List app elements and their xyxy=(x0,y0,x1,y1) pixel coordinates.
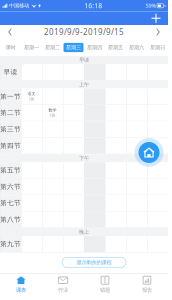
staticText: 16:18 xyxy=(84,1,102,10)
staticText: 2019/9/9-2019/9/15 xyxy=(44,27,124,37)
button[interactable]: 星期五 xyxy=(105,39,126,56)
button[interactable]: Next week xyxy=(148,25,168,39)
button[interactable] xyxy=(126,138,147,154)
button[interactable]: 错题 xyxy=(84,273,126,300)
button[interactable] xyxy=(105,212,126,227)
button[interactable]: 星期六 xyxy=(126,39,147,56)
button[interactable]: 作业 xyxy=(42,273,84,300)
button[interactable] xyxy=(147,138,168,154)
staticText: 报告 xyxy=(142,287,152,293)
button[interactable] xyxy=(147,212,168,227)
button[interactable]: 星期四 xyxy=(84,39,105,56)
staticText: 错题 xyxy=(100,287,110,293)
staticText: 星期日 xyxy=(150,44,165,51)
staticText: 星期五 xyxy=(108,44,123,51)
staticText: 中国移动 xyxy=(9,2,29,9)
button[interactable]: 数学 xyxy=(42,105,63,121)
button[interactable]: Add xyxy=(148,11,164,25)
button[interactable] xyxy=(42,212,63,227)
button[interactable]: 显示剩余的课程 xyxy=(62,257,126,267)
button[interactable] xyxy=(126,162,147,178)
staticText: 早读 xyxy=(79,57,89,63)
button[interactable]: 语文 xyxy=(21,88,42,104)
staticText: 语文 xyxy=(27,91,35,96)
button[interactable]: 星期三 xyxy=(63,39,84,56)
button[interactable]: Home xyxy=(134,138,164,167)
staticText: 星期六 xyxy=(129,44,144,51)
button[interactable]: 星期日 xyxy=(147,39,168,56)
button[interactable] xyxy=(63,212,84,227)
button[interactable]: 课时 xyxy=(0,39,21,56)
button[interactable] xyxy=(126,212,147,227)
staticText: 晚上 xyxy=(79,229,89,235)
button[interactable]: 星期二 xyxy=(42,39,63,56)
button[interactable]: 星期一 xyxy=(21,39,42,56)
button[interactable]: 课表 xyxy=(0,273,42,300)
button[interactable] xyxy=(21,212,42,227)
staticText: 第一节 xyxy=(0,92,21,100)
staticText: 59% xyxy=(145,2,155,9)
button[interactable] xyxy=(147,162,168,178)
button[interactable]: Previous week xyxy=(0,25,20,39)
button[interactable]: 报告 xyxy=(126,273,168,300)
